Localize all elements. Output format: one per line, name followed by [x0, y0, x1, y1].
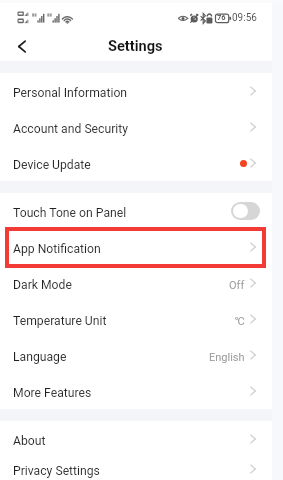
button[interactable]: Personal Information [0, 73, 272, 109]
staticText: English [209, 351, 245, 364]
staticText: 76 [217, 13, 226, 22]
staticText: Settings [108, 37, 163, 54]
staticText: App Notification [13, 242, 101, 256]
button[interactable]: App Notification [0, 229, 272, 265]
staticText: Account and Security [13, 122, 129, 136]
staticText: Privacy Settings [13, 464, 100, 478]
button[interactable]: Dark Mode [0, 265, 272, 301]
staticText: Dark Mode [13, 278, 72, 292]
button[interactable]: More Features [0, 373, 272, 409]
button[interactable]: About [0, 421, 272, 457]
staticText: 09:56 [232, 12, 257, 24]
button[interactable]: Temperature Unit [0, 301, 272, 337]
button[interactable]: Language [0, 337, 272, 373]
staticText: Temperature Unit [13, 314, 107, 328]
staticText: ℃ [235, 315, 245, 328]
staticText: Device Update [13, 158, 91, 172]
staticText: Touch Tone on Panel [13, 206, 127, 220]
button[interactable]: Privacy Settings [0, 457, 272, 480]
staticText: Language [13, 350, 67, 364]
button[interactable]: Device Update [0, 145, 272, 181]
button[interactable]: Touch Tone on Panel [0, 193, 272, 229]
staticText: About [13, 434, 46, 448]
button[interactable]: Account and Security [0, 109, 272, 145]
staticText: Off [229, 279, 245, 292]
staticText: Personal Information [13, 86, 128, 100]
button[interactable]: Back [8, 32, 36, 60]
staticText: More Features [13, 386, 92, 400]
